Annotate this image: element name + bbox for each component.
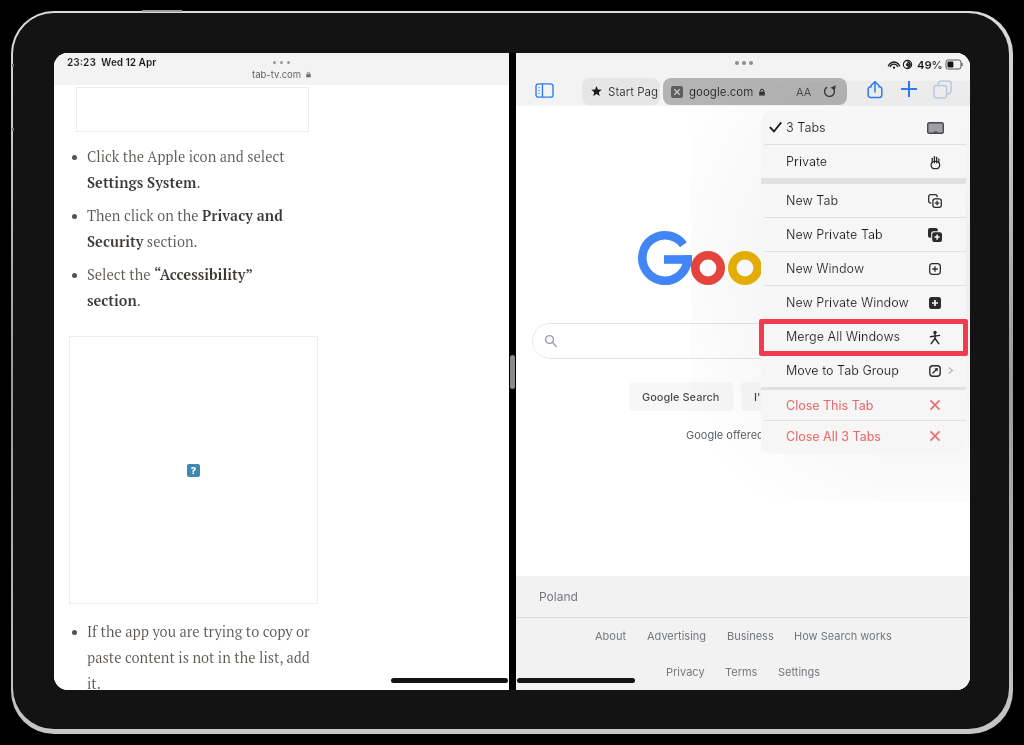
staticText: Close This Tab: [786, 398, 874, 413]
staticText: Wed 12 Apr: [101, 56, 157, 68]
button[interactable]: Privacy: [656, 665, 715, 678]
button[interactable]: New Tab: [761, 184, 966, 217]
staticText: Merge All Windows: [786, 329, 901, 344]
staticText: Private: [786, 154, 828, 169]
staticText: Then click on the Privacy and Security s…: [87, 206, 312, 252]
staticText: ?: [191, 465, 197, 476]
staticText: 49%: [917, 58, 943, 71]
button[interactable]: google.com: [663, 78, 847, 105]
staticText: Business: [727, 629, 774, 642]
button[interactable]: Move to Tab Group: [761, 354, 966, 387]
button[interactable]: Close All 3 Tabs: [761, 421, 966, 451]
button[interactable]: How Search works: [784, 629, 902, 642]
button[interactable]: Show all tabs: [930, 77, 954, 101]
button[interactable]: Private: [761, 145, 966, 178]
staticText: Close All 3 Tabs: [786, 429, 881, 444]
button[interactable]: Share: [863, 77, 887, 101]
staticText: Terms: [725, 665, 758, 678]
button[interactable]: Merge All Windows: [761, 320, 966, 353]
button[interactable]: Settings: [768, 665, 831, 678]
button[interactable]: About: [585, 629, 637, 642]
button[interactable]: New Private Window: [761, 286, 966, 319]
staticText: New Private Window: [786, 295, 909, 310]
staticText: Move to Tab Group: [786, 363, 899, 378]
button[interactable]: Show sidebar: [533, 77, 556, 104]
button[interactable]: New Window: [761, 252, 966, 285]
button[interactable]: 3 Tabs: [761, 111, 966, 144]
staticText: Advertising: [647, 629, 707, 642]
staticText: Click the Apple icon and select Settings…: [87, 147, 312, 193]
staticText: I'm Feeling Lucky: [754, 390, 846, 403]
button[interactable]: New tab: [897, 77, 921, 101]
staticText: New Private Tab: [786, 227, 883, 242]
staticText: 23:23: [67, 56, 96, 68]
staticText: About: [595, 629, 627, 642]
staticText: Select the “Accessibility” section.: [87, 265, 272, 311]
staticText: Start Pag: [608, 85, 659, 99]
staticText: Google offered in: polski: [686, 428, 813, 441]
button[interactable]: Terms: [715, 665, 768, 678]
staticText: Poland: [539, 589, 578, 604]
staticText: New Window: [786, 261, 865, 276]
button[interactable]: [532, 323, 912, 359]
staticText: 3 Tabs: [786, 120, 826, 135]
button[interactable]: Start Pag: [582, 78, 660, 105]
button[interactable]: Google Search: [629, 382, 733, 411]
staticText: Google Search: [642, 390, 720, 403]
staticText: If the app you are trying to copy or pas…: [87, 622, 312, 690]
button[interactable]: New Private Tab: [761, 218, 966, 251]
button[interactable]: Advertising: [637, 629, 717, 642]
button[interactable]: Business: [717, 629, 784, 642]
staticText: tab-tv.com: [252, 69, 302, 80]
staticText: How Search works: [794, 629, 892, 642]
button[interactable]: I'm Feeling Lucky: [741, 382, 859, 411]
staticText: New Tab: [786, 193, 839, 208]
staticText: AA: [796, 85, 812, 98]
staticText: google.com: [689, 85, 754, 99]
staticText: Settings: [778, 665, 821, 678]
button[interactable]: Close This Tab: [761, 390, 966, 420]
staticText: Privacy: [666, 665, 705, 678]
